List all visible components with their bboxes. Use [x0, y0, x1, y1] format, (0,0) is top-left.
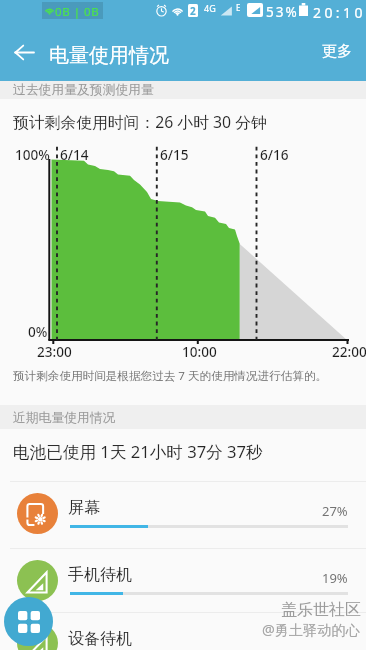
- staticText: 6/15: [160, 145, 189, 164]
- button[interactable]: 更多: [308, 26, 366, 77]
- button[interactable]: Back: [11, 39, 37, 65]
- staticText: 屏幕: [68, 498, 100, 518]
- staticText: 20:10: [313, 3, 366, 22]
- staticText: 0%: [28, 322, 48, 341]
- staticText: 近期电量使用情况: [13, 410, 116, 426]
- staticText: 设备待机: [68, 629, 132, 649]
- staticText: 23:00: [37, 342, 72, 361]
- staticText: 更多: [322, 42, 352, 61]
- staticText: 过去使用量及预测使用量: [13, 82, 154, 98]
- staticText: 6/14: [60, 145, 89, 164]
- staticText: 2: [190, 4, 196, 17]
- staticText: 53%: [266, 3, 299, 21]
- staticText: 盖乐世社区: [281, 600, 361, 620]
- staticText: 10:00: [182, 342, 217, 361]
- staticText: 4G: [204, 2, 216, 14]
- staticText: 19%: [322, 569, 348, 587]
- button[interactable]: 手机待机: [0, 548, 366, 612]
- staticText: 6/16: [260, 145, 289, 164]
- button[interactable]: 设备待机: [0, 612, 366, 650]
- staticText: 100%: [15, 145, 50, 164]
- button[interactable]: 屏幕: [0, 481, 366, 548]
- staticText: 预计剩余使用时间：26 小时 30 分钟: [13, 111, 267, 133]
- staticText: 22:00: [332, 342, 366, 361]
- staticText: 27%: [322, 502, 348, 520]
- staticText: E: [236, 2, 241, 13]
- staticText: 预计剩余使用时间是根据您过去 7 天的使用情况进行估算的。: [13, 368, 328, 384]
- staticText: 手机待机: [68, 565, 132, 585]
- staticText: 电池已使用 1天 21小时 37分 37秒: [13, 440, 263, 463]
- staticText: 0B | 0B: [55, 4, 100, 20]
- button[interactable]: Apps: [4, 597, 53, 646]
- staticText: 电量使用情况: [49, 43, 169, 68]
- staticText: @勇土驿动的心: [262, 620, 360, 639]
